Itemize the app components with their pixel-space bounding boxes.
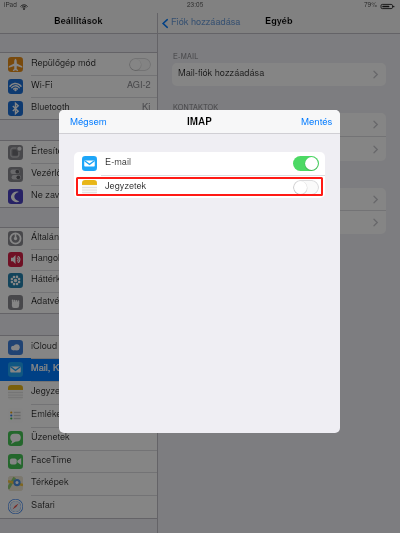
staticText: FaceTime — [31, 452, 72, 465]
staticText: KONTAKTOK — [173, 102, 219, 112]
button[interactable]: Szinkronizálás — [172, 188, 386, 210]
staticText: Wi-Fi — [31, 77, 53, 90]
button[interactable]: E-mail — [74, 152, 325, 175]
staticText: iPad — [4, 0, 17, 9]
button[interactable]: Mail-fiók hozzáadása — [172, 63, 386, 86]
staticText: Vezérlőközpont — [31, 165, 94, 178]
button[interactable]: Adatvédelem — [0, 292, 157, 313]
staticText: iCloud — [31, 338, 58, 351]
button[interactable]: Hangok — [0, 249, 157, 270]
staticText: Értesítések — [31, 143, 77, 156]
staticText: E-mail — [105, 154, 132, 167]
button[interactable]: Általános — [0, 228, 157, 249]
staticText: Megjelenítési sorrend — [178, 140, 266, 153]
button[interactable]: Wi-Fi — [0, 75, 157, 97]
staticText: Ne zavarjanak — [31, 187, 90, 200]
button[interactable]: Jegyzetek — [74, 176, 325, 198]
button[interactable]: Megjelenítési sorrend — [172, 137, 386, 161]
staticText: Rendezési sorrend — [178, 115, 255, 128]
button[interactable]: Bluetooth — [0, 97, 157, 119]
staticText: Beállítások — [54, 14, 103, 27]
button[interactable]: Mail, Kontaktok — [0, 358, 157, 381]
staticText: NAPTÁRAK — [173, 178, 213, 188]
staticText: Hangok — [31, 250, 63, 263]
button[interactable]: Vezérlőközpont — [0, 163, 157, 185]
staticText: 79% — [364, 0, 378, 9]
staticText: Safari — [31, 497, 55, 510]
button[interactable]: Off — [293, 180, 319, 195]
button[interactable]: Értesítések — [0, 141, 157, 163]
button[interactable]: Mentés — [300, 112, 334, 132]
staticText: E-MAIL — [173, 51, 199, 61]
button[interactable]: Alapértelmezett naptár — [172, 211, 386, 234]
staticText: Jegyzetek — [31, 383, 73, 396]
button[interactable]: Háttérkép — [0, 270, 157, 291]
button[interactable]: Rendezési sorrend — [172, 113, 386, 136]
button[interactable]: Repülőgép mód — [0, 53, 157, 75]
staticText: Emlékeztetők — [31, 406, 86, 419]
staticText: Háttérkép — [31, 271, 71, 284]
staticText: Üzenetek — [31, 429, 70, 442]
button[interactable]: iCloud — [0, 336, 157, 359]
staticText: Általános — [31, 229, 69, 242]
staticText: Jegyzetek — [105, 178, 147, 191]
staticText: Repülőgép mód — [31, 55, 96, 68]
button[interactable]: Safari — [0, 495, 157, 518]
button[interactable]: Jegyzetek — [0, 381, 157, 404]
button[interactable]: Fiók hozzáadása — [161, 15, 242, 32]
staticText: Mail-fiók hozzáadása — [178, 65, 265, 78]
staticText: Egyéb — [265, 14, 293, 27]
staticText: Adatvédelem — [31, 293, 85, 306]
button[interactable]: Mégsem — [69, 112, 108, 132]
button[interactable]: Üzenetek — [0, 427, 157, 450]
button[interactable]: Emlékeztetők — [0, 404, 157, 427]
staticText: IMAP — [187, 114, 212, 128]
staticText: Mégsem — [70, 114, 107, 128]
button[interactable]: Off — [129, 58, 151, 71]
staticText: Mail, Kontaktok — [31, 360, 94, 373]
staticText: Szinkronizálás — [178, 190, 238, 203]
button[interactable]: Ne zavarjanak — [0, 185, 157, 207]
staticText: Bluetooth — [31, 99, 70, 112]
button[interactable]: FaceTime — [0, 450, 157, 473]
button[interactable]: Térképek — [0, 472, 157, 495]
staticText: Mentés — [301, 114, 333, 128]
button[interactable]: On — [293, 156, 319, 171]
staticText: Térképek — [31, 474, 69, 487]
staticText: 23:05 — [187, 0, 204, 9]
staticText: Ki — [142, 99, 151, 112]
staticText: Fiók hozzáadása — [171, 14, 241, 27]
staticText: AGI-2 — [127, 77, 151, 90]
